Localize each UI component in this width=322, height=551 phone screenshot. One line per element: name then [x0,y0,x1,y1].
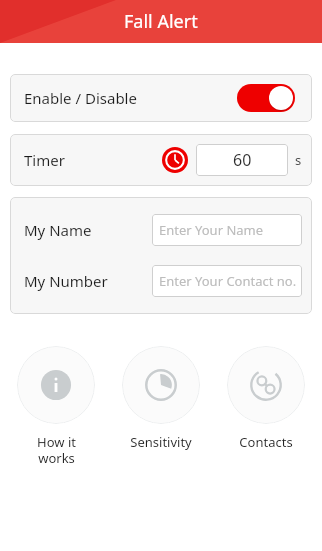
staticText: Enable / Disable [24,88,137,108]
other: Contacts [250,369,282,401]
button[interactable]: How it works [10,346,102,466]
button[interactable]: Enable or disable toggle [237,84,295,112]
button[interactable]: Contacts [220,346,312,451]
staticText: s [295,151,302,169]
staticText: Contacts [239,433,293,451]
staticText: My Name [24,220,92,240]
other: How it works [40,369,72,401]
staticText: How it works [37,433,76,466]
button[interactable]: Sensitivity [115,346,207,451]
staticText: 60 [233,149,252,171]
button[interactable]: Timer [162,147,188,173]
staticText: Sensitivity [130,433,192,451]
staticText: Enter Your Name [159,221,264,239]
staticText: Fall Alert [124,9,198,34]
staticText: Timer [24,150,65,170]
button[interactable]: Enable / Disable [10,74,312,122]
staticText: Enter Your Contact no. [159,272,297,290]
button[interactable]: Enter Your Contact no. [152,265,302,297]
other: Sensitivity [145,369,177,401]
button[interactable]: Enter Your Name [152,214,302,246]
button[interactable]: 60 [196,144,288,176]
staticText: My Number [24,271,108,291]
